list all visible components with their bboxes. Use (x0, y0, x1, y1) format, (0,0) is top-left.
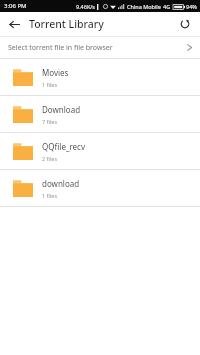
button[interactable]: QQfile_recv (0, 133, 200, 169)
staticText: Download (42, 104, 81, 115)
staticText: 3:06 PM (4, 2, 27, 10)
button[interactable]: download (0, 170, 200, 206)
staticText: 1 files (42, 192, 58, 199)
button[interactable]: Download (0, 96, 200, 132)
button[interactable]: Select torrent file in file browser (0, 37, 200, 58)
button[interactable]: Back (4, 14, 24, 34)
staticText: 7 files (42, 118, 58, 125)
staticText: Select torrent file in file browser (8, 43, 113, 53)
staticText: 2 files (42, 155, 58, 162)
staticText: China Mobile (127, 3, 161, 10)
staticText: 9.46K/s (76, 3, 95, 10)
staticText: QQfile_recv (42, 141, 85, 152)
button[interactable]: Movies (0, 59, 200, 95)
staticText: 1 files (42, 81, 58, 88)
staticText: 4G (163, 3, 171, 10)
staticText: Torrent Library (29, 17, 104, 31)
staticText: download (42, 178, 80, 189)
staticText: 94% (186, 3, 197, 10)
staticText: Movies (42, 67, 69, 78)
button[interactable]: Refresh (175, 14, 195, 34)
